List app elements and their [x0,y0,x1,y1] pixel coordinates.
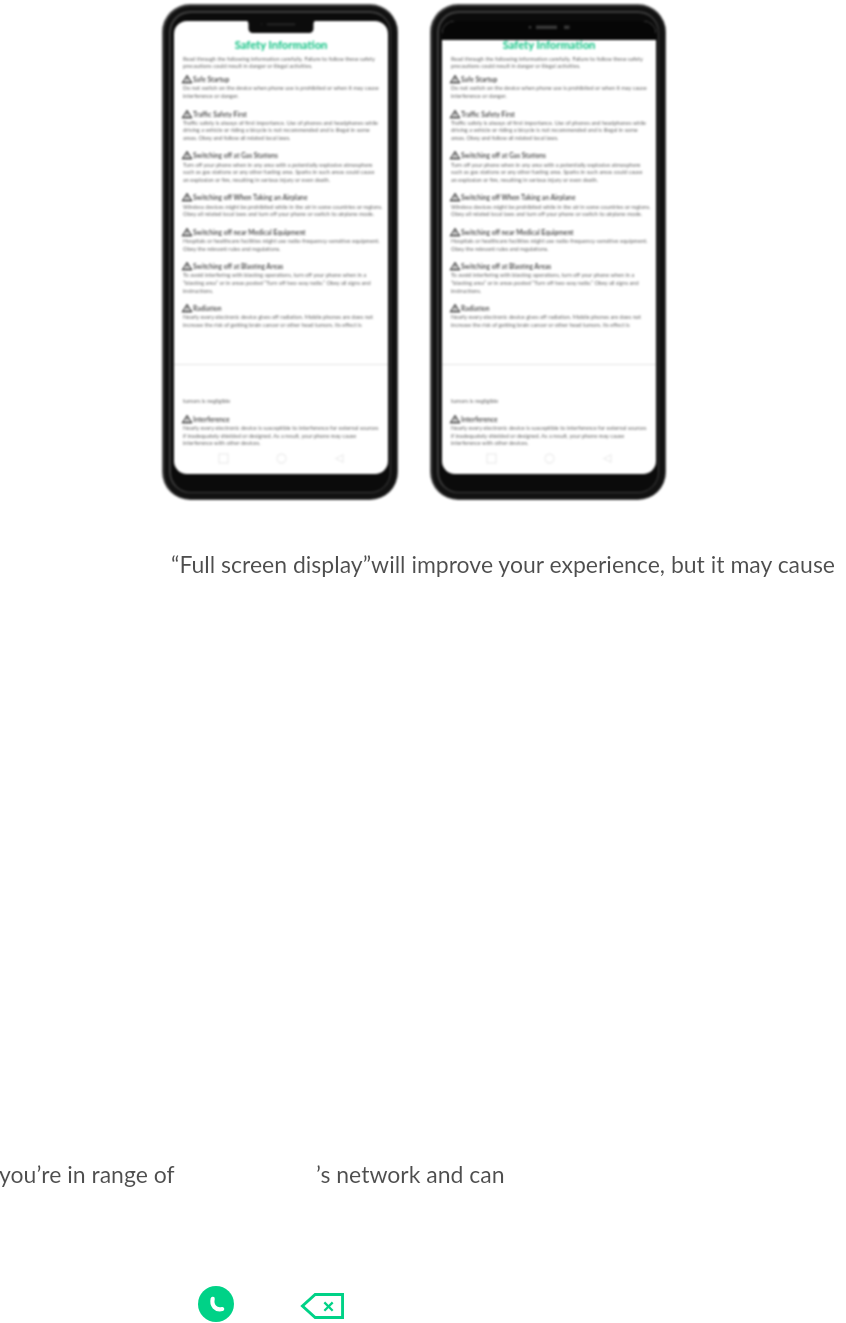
staticText: Interference [461,415,498,423]
staticText: interference or danger. [183,92,239,99]
staticText: an explosion or fire, resulting in serio… [183,176,331,183]
staticText: Switching off When Taking an Airplane [461,193,576,201]
staticText: Traffic Safety First [461,110,515,118]
staticText: Switching off at Gas Stations [193,151,279,159]
staticText: Nearly every electronic device gives off… [183,313,373,320]
staticText: if inadequately shielded or designed. As… [183,432,357,439]
staticText: Traffic safety is always of first import… [183,119,379,126]
staticText: tumors is negligible [183,397,231,404]
staticText: Interference [193,415,230,423]
staticText: Do not switch on the device when phone u… [183,84,379,91]
staticText: an explosion or fire, resulting in serio… [451,176,599,183]
staticText: Nearly every electronic device is suscep… [183,424,379,431]
staticText: Wireless devices might be prohibited whi… [451,203,651,210]
staticText: Safety Information [442,38,656,51]
staticText: Obey all related local laws and turn off… [451,210,643,217]
staticText: Switching off near Medical Equipment [193,228,306,236]
staticText: precautions could result in danger or il… [451,62,581,69]
staticText: interference or danger. [451,92,507,99]
staticText: Turn off your phone when in any area wit… [183,161,373,168]
staticText: areas. Obey and follow all related local… [451,134,559,141]
staticText: precautions could result in danger or il… [183,62,313,69]
staticText: Safe Startup [461,75,498,83]
staticText: Switching off at Blasting Areas [461,262,552,270]
button[interactable]: Back [332,451,347,466]
staticText: instructions. [183,287,214,294]
staticText: ’s network and can [316,1160,505,1188]
staticText: driving a vehicle or riding a bicycle is… [451,126,638,133]
staticText: areas. Obey and follow all related local… [183,134,291,141]
staticText: Safety Information [174,38,388,51]
staticText: Safe Startup [193,75,230,83]
staticText: Obey all related local laws and turn off… [183,210,375,217]
staticText: Switching off When Taking an Airplane [193,193,308,201]
button[interactable]: Call [198,1286,234,1322]
staticText: To avoid interfering with blasting opera… [183,271,367,278]
staticText: interference with other devices. [451,439,529,446]
staticText: “blasting area” or in areas posted “Turn… [183,279,371,286]
staticText: if inadequately shielded or designed. As… [451,432,625,439]
staticText: “blasting area” or in areas posted “Turn… [451,279,639,286]
staticText: driving a vehicle or riding a bicycle is… [183,126,370,133]
staticText: instructions. [451,287,482,294]
staticText: To avoid interfering with blasting opera… [451,271,635,278]
staticText: Turn off your phone when in any area wit… [451,161,641,168]
staticText: Hospitals or healthcare facilities might… [451,237,648,244]
staticText: Switching off at Gas Stations [461,151,547,159]
staticText: Do not switch on the device when phone u… [451,84,647,91]
staticText: Hospitals or healthcare facilities might… [183,237,380,244]
staticText: Switching off near Medical Equipment [461,228,574,236]
staticText: Radiation [193,304,222,312]
button[interactable]: Backspace [301,1293,344,1319]
staticText: Read through the following information c… [183,55,375,62]
staticText: such as gas stations or any other fuelin… [183,168,375,175]
staticText: Switching off at Blasting Areas [193,262,284,270]
staticText: tumors is negligible [451,397,499,404]
staticText: you’re in range of [0,1160,175,1188]
staticText: increase the risk of getting brain cance… [451,321,630,328]
staticText: Nearly every electronic device is suscep… [451,424,647,431]
staticText: Nearly every electronic device gives off… [451,313,641,320]
staticText: Obey the relevant rules and regulations. [451,245,549,252]
staticText: Traffic safety is always of first import… [451,119,647,126]
staticText: interference with other devices. [183,439,261,446]
button[interactable]: Back [600,451,615,466]
staticText: “Full screen display”will improve your e… [171,550,835,578]
staticText: Traffic Safety First [193,110,247,118]
staticText: Radiation [461,304,490,312]
staticText: Obey the relevant rules and regulations. [183,245,281,252]
staticText: Read through the following information c… [451,55,643,62]
staticText: increase the risk of getting brain cance… [183,321,362,328]
staticText: such as gas stations or any other fuelin… [451,168,643,175]
staticText: Wireless devices might be prohibited whi… [183,203,383,210]
